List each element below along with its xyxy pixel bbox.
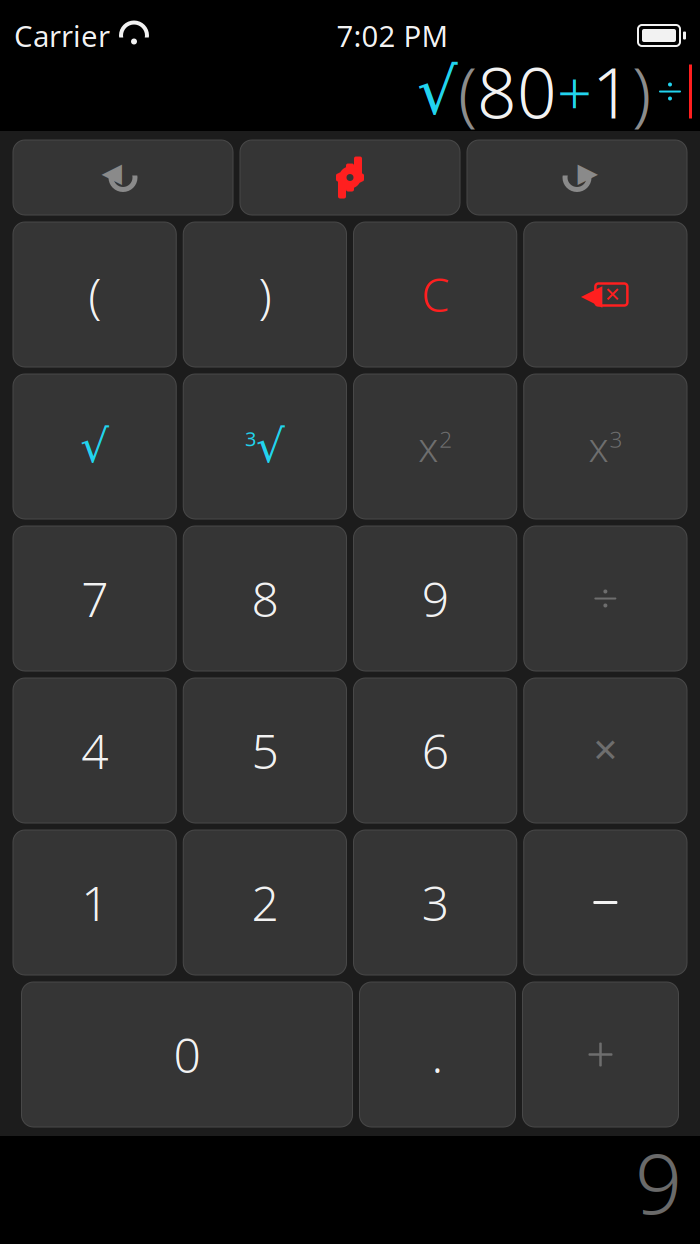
staticText: 0 (173, 1023, 200, 1086)
button[interactable]: 3 (353, 830, 517, 975)
button[interactable]: 4 (13, 678, 176, 823)
staticText: 6 (422, 719, 449, 782)
staticText: 80 (477, 45, 557, 138)
button[interactable]: Multiply (524, 678, 687, 823)
staticText: 1 (592, 45, 632, 138)
button[interactable]: 0 (21, 982, 352, 1127)
staticText: √ (80, 421, 109, 472)
button[interactable]: Undo (13, 140, 233, 215)
button[interactable]: Settings (240, 140, 460, 215)
button[interactable]: C (353, 222, 517, 367)
staticText: 3 (422, 871, 449, 934)
button[interactable]: 5 (183, 678, 346, 823)
button[interactable]: x squared (353, 374, 517, 519)
button[interactable]: Divide (524, 526, 687, 671)
button[interactable]: 1 (13, 830, 176, 975)
button[interactable]: Minus (524, 830, 687, 975)
staticText: 3 (245, 425, 256, 452)
staticText: 8 (251, 567, 278, 630)
button[interactable]: Plus (522, 982, 678, 1127)
staticText: 7 (81, 567, 108, 630)
staticText: √ (256, 421, 285, 472)
staticText: Carrier (14, 16, 110, 55)
button[interactable]: x cubed (524, 374, 687, 519)
staticText: + (557, 51, 592, 132)
staticText: ( (88, 263, 101, 326)
button[interactable]: Backspace (524, 222, 687, 367)
staticText: 5 (251, 719, 278, 782)
button[interactable]: 8 (183, 526, 346, 671)
button[interactable]: ) (183, 222, 346, 367)
button[interactable]: 6 (353, 678, 517, 823)
staticText: 4 (81, 719, 108, 782)
staticText: 2 (439, 424, 452, 454)
button[interactable]: 2 (183, 830, 346, 975)
button[interactable]: Square root (13, 374, 176, 519)
button[interactable]: 9 (353, 526, 517, 671)
staticText: √ (417, 55, 458, 128)
staticText: 9 (422, 567, 449, 630)
staticText: 7:02 PM (336, 16, 448, 55)
staticText: . (431, 1023, 443, 1086)
button[interactable]: Cube root (183, 374, 346, 519)
staticText: C (421, 264, 449, 325)
staticText: ▶ (577, 157, 598, 188)
staticText: ✕ (604, 283, 621, 306)
button[interactable]: ( (13, 222, 176, 367)
staticText: ◀ (580, 279, 602, 310)
staticText: ( (458, 45, 477, 138)
staticText: 9 (635, 1127, 682, 1237)
staticText: 1 (81, 871, 108, 934)
button[interactable]: . (359, 982, 515, 1127)
staticText: ✕ (592, 732, 619, 769)
staticText: x (418, 420, 438, 473)
button[interactable]: Redo (467, 140, 687, 215)
staticText: ) (258, 263, 271, 326)
button[interactable]: 7 (13, 526, 176, 671)
staticText: 2 (251, 871, 278, 934)
staticText: 3 (609, 424, 622, 454)
staticText: x (588, 420, 608, 473)
staticText: ◀ (101, 157, 122, 188)
staticText: ) (632, 45, 651, 138)
